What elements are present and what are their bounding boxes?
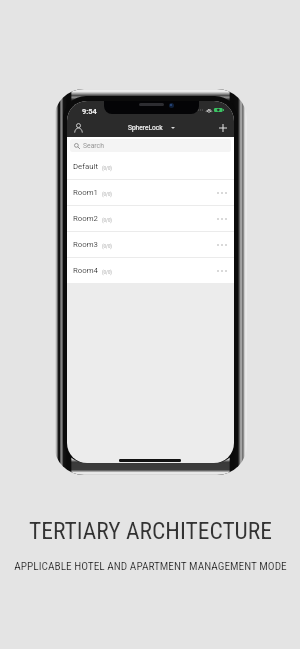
- staticText: Room1: [73, 188, 98, 197]
- staticText: TERTIARY ARCHITECTURE: [29, 517, 272, 545]
- staticText: 9:54: [82, 107, 97, 116]
- staticText: SphereLock: [128, 124, 163, 132]
- button[interactable]: Default: [67, 153, 234, 179]
- button[interactable]: Add: [211, 118, 234, 137]
- staticText: (0/0): [102, 243, 112, 249]
- button[interactable]: More options: [217, 270, 227, 272]
- button[interactable]: Account: [67, 118, 90, 137]
- staticText: Room2: [73, 214, 98, 223]
- button[interactable]: Room1: [67, 180, 234, 205]
- staticText: Room3: [73, 240, 98, 249]
- staticText: APPLICABLE HOTEL AND APARTMENT MANAGEMEN…: [14, 560, 287, 573]
- staticText: (0/0): [102, 217, 112, 223]
- button[interactable]: Room4: [67, 258, 234, 283]
- staticText: (0/0): [102, 191, 112, 197]
- staticText: (0/0): [102, 269, 112, 275]
- button[interactable]: More options: [217, 244, 227, 246]
- button[interactable]: More options: [217, 218, 227, 220]
- staticText: Room4: [73, 266, 98, 275]
- button[interactable]: Search: [70, 139, 231, 152]
- button[interactable]: More options: [217, 192, 227, 194]
- button[interactable]: Room3: [67, 232, 234, 257]
- button[interactable]: Room2: [67, 206, 234, 231]
- staticText: Default: [73, 162, 98, 171]
- button[interactable]: SphereLock: [128, 118, 175, 137]
- staticText: Search: [83, 142, 104, 150]
- staticText: (0/0): [102, 165, 112, 171]
